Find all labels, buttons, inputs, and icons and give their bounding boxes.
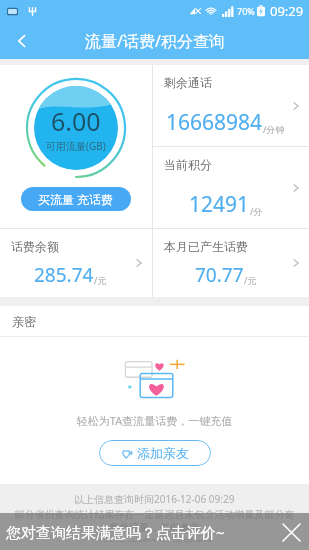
button[interactable]: 当前积分 <box>153 147 309 228</box>
button[interactable]: 您对查询结果满意吗？点击评价~ <box>0 513 309 550</box>
staticText: 买流量 充话费 <box>38 191 114 207</box>
button[interactable]: 本月已产生话费 <box>153 229 309 297</box>
staticText: /分 <box>250 205 263 217</box>
staticText: 285.74 <box>34 262 94 288</box>
staticText: 轻松为TA查流量话费，一键充值 <box>0 413 309 428</box>
staticText: 流量/话费/积分查询 <box>85 30 225 52</box>
button[interactable]: 剩余通话 <box>153 65 309 146</box>
staticText: /元 <box>94 274 107 286</box>
button[interactable]: 添加亲友 <box>99 440 211 466</box>
staticText: 可用流量(GB) <box>46 139 106 153</box>
staticText: 以上信息查询时间2016-12-06 09:29 <box>74 492 235 506</box>
staticText: Copyright©2016中国移动 <box>96 536 214 542</box>
button[interactable]: 买流量 充话费 <box>21 187 131 211</box>
staticText: 70.77 <box>195 262 244 288</box>
staticText: 当前积分 <box>164 157 212 172</box>
staticText: 亲密 <box>12 314 36 329</box>
staticText: 09:29 <box>270 2 304 20</box>
button[interactable]: 话费余额 <box>0 229 152 297</box>
staticText: /元 <box>244 274 257 286</box>
staticText: 12491 <box>189 190 250 219</box>
staticText: 本月已产生话费 <box>164 239 248 254</box>
staticText: 16668984 <box>166 108 263 137</box>
staticText: 您对查询结果满意吗？点击评价~ <box>6 522 225 542</box>
button[interactable]: Close <box>273 514 309 550</box>
staticText: 添加亲友 <box>137 445 189 461</box>
staticText: 话费余额 <box>11 239 59 254</box>
staticText: 部分省份查询统计结果存在一定延迟且未包含活动增量及部分套餐外流量，仅供参考 <box>10 508 299 534</box>
staticText: /分钟 <box>263 123 285 135</box>
button[interactable]: Back <box>0 22 44 59</box>
staticText: 剩余通话 <box>164 75 212 90</box>
staticText: 70% <box>237 5 255 17</box>
staticText: 6.00 <box>51 104 101 138</box>
